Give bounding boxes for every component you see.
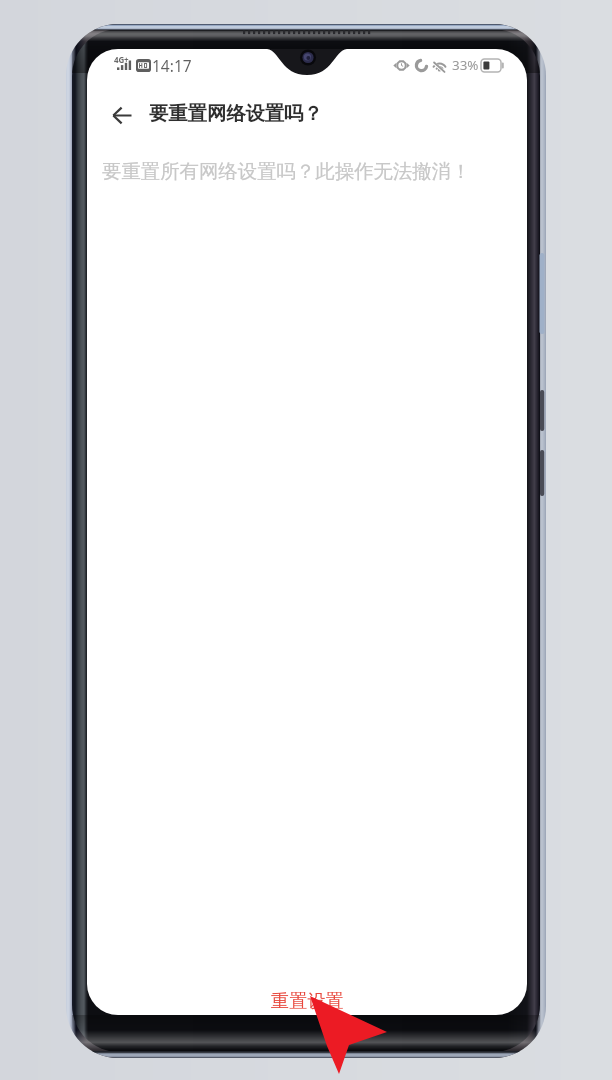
staticText: 要重置网络设置吗？ (149, 101, 323, 125)
staticText: + (124, 54, 129, 65)
staticText: 4G (114, 54, 125, 65)
button[interactable]: 重置设置 (87, 975, 527, 1015)
button[interactable]: Back (97, 90, 147, 140)
staticText: 33% (452, 56, 479, 74)
staticText: 重置设置 (271, 989, 344, 1012)
staticText: 要重置所有网络设置吗？此操作无法撤消！ (102, 159, 471, 183)
staticText: 14:17 (152, 55, 192, 76)
